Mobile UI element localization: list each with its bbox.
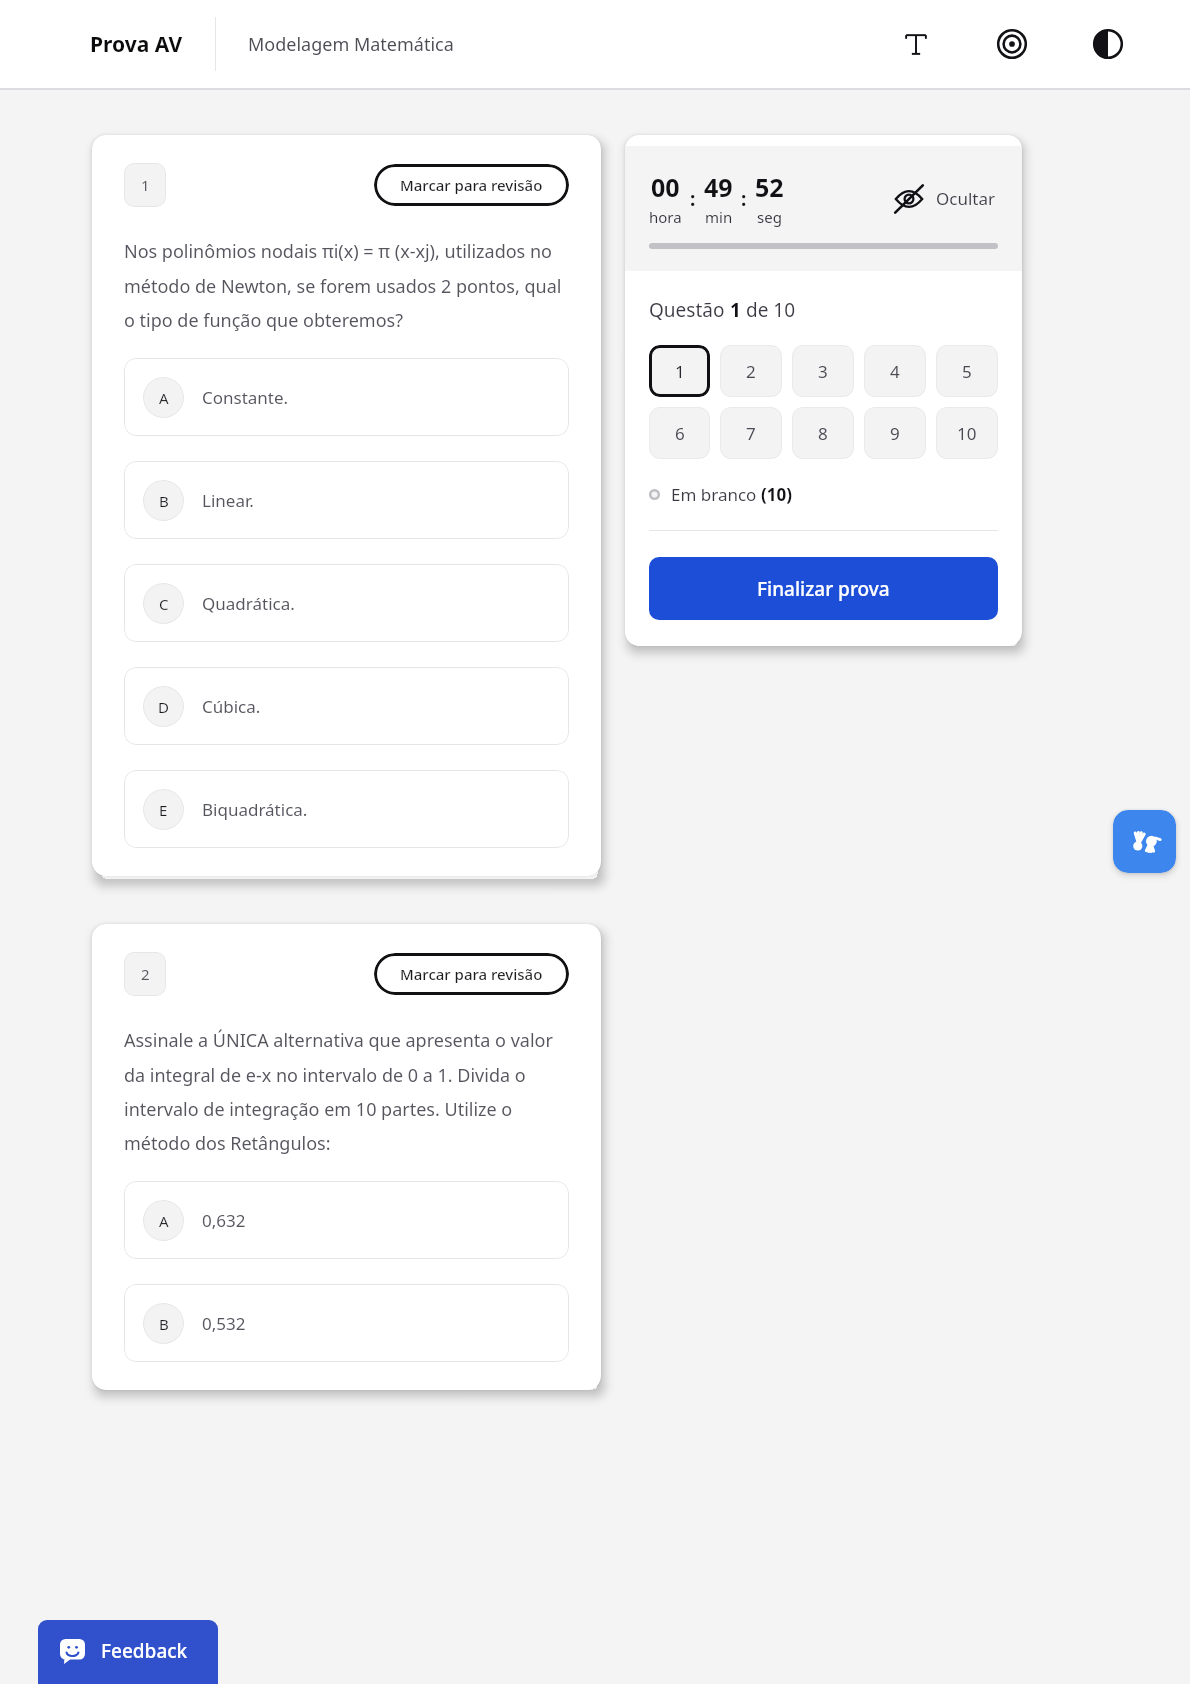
- staticText: Nos polinômios nodais πi(x) = π (x-xj), …: [124, 239, 569, 332]
- staticText: Finalizar prova: [757, 576, 890, 602]
- button[interactable]: B: [124, 461, 569, 539]
- button[interactable]: Tamanho do texto: [890, 18, 942, 70]
- staticText: 2: [746, 360, 756, 383]
- staticText: 0,632: [202, 1209, 246, 1232]
- button[interactable]: 10: [936, 407, 998, 459]
- button[interactable]: E: [124, 770, 569, 848]
- button[interactable]: D: [124, 667, 569, 745]
- staticText: C: [159, 594, 169, 614]
- staticText: 6: [675, 422, 685, 445]
- button[interactable]: 7: [720, 407, 782, 459]
- staticText: de 10: [741, 297, 796, 323]
- button[interactable]: Contraste: [1082, 18, 1134, 70]
- staticText: Cúbica.: [202, 695, 261, 718]
- button[interactable]: C: [124, 564, 569, 642]
- staticText: Quadrática.: [202, 592, 295, 615]
- button[interactable]: 8: [792, 407, 854, 459]
- staticText: Biquadrática.: [202, 798, 308, 821]
- staticText: 52: [755, 170, 784, 204]
- button[interactable]: Modo foco: [986, 18, 1038, 70]
- staticText: 1: [675, 360, 685, 383]
- button[interactable]: 6: [649, 407, 710, 459]
- staticText: (10): [761, 483, 792, 506]
- staticText: A: [159, 388, 169, 408]
- staticText: 5: [962, 360, 972, 383]
- staticText: Marcar para revisão: [400, 175, 543, 195]
- button[interactable]: 9: [864, 407, 926, 459]
- button[interactable]: Finalizar prova: [649, 557, 998, 620]
- staticText: 9: [890, 422, 900, 445]
- staticText: 7: [746, 422, 756, 445]
- staticText: Constante.: [202, 386, 289, 409]
- staticText: E: [159, 800, 168, 820]
- button[interactable]: A: [124, 358, 569, 436]
- staticText: Modelagem Matemática: [248, 32, 454, 57]
- button[interactable]: Feedback: [38, 1620, 218, 1684]
- staticText: 1: [141, 175, 150, 195]
- staticText: Prova AV: [90, 30, 183, 59]
- staticText: Ocultar: [936, 187, 996, 210]
- staticText: B: [159, 1314, 169, 1334]
- staticText: Marcar para revisão: [400, 964, 543, 984]
- button[interactable]: 3: [792, 345, 854, 397]
- button[interactable]: 5: [936, 345, 998, 397]
- staticText: Linear.: [202, 489, 254, 512]
- staticText: 4: [890, 360, 900, 383]
- staticText: 10: [957, 422, 977, 445]
- staticText: A: [159, 1211, 169, 1231]
- staticText: :: [690, 186, 696, 212]
- staticText: Em branco: [671, 483, 761, 506]
- staticText: 49: [704, 170, 733, 204]
- button[interactable]: B: [124, 1284, 569, 1362]
- staticText: 0,532: [202, 1312, 246, 1335]
- staticText: Feedback: [101, 1638, 188, 1664]
- button[interactable]: A: [124, 1181, 569, 1259]
- button[interactable]: 4: [864, 345, 926, 397]
- staticText: D: [158, 697, 169, 717]
- button[interactable]: Marcar para revisão: [374, 953, 569, 995]
- staticText: 00: [651, 170, 680, 204]
- button[interactable]: Ocultar: [888, 181, 1002, 216]
- button[interactable]: Marcar para revisão: [374, 164, 569, 206]
- staticText: 3: [818, 360, 828, 383]
- staticText: B: [159, 491, 169, 511]
- button[interactable]: 1: [649, 345, 710, 397]
- staticText: Assinale a ÚNICA alternativa que apresen…: [124, 1028, 569, 1155]
- staticText: :: [741, 186, 747, 212]
- staticText: 8: [818, 422, 828, 445]
- staticText: seg: [757, 207, 782, 227]
- staticText: hora: [649, 207, 682, 227]
- button[interactable]: 2: [720, 345, 782, 397]
- staticText: 1: [730, 297, 741, 323]
- staticText: Questão: [649, 297, 730, 323]
- staticText: 2: [141, 964, 150, 984]
- button[interactable]: Tradutor de Libras: [1113, 810, 1176, 873]
- staticText: min: [705, 207, 733, 227]
